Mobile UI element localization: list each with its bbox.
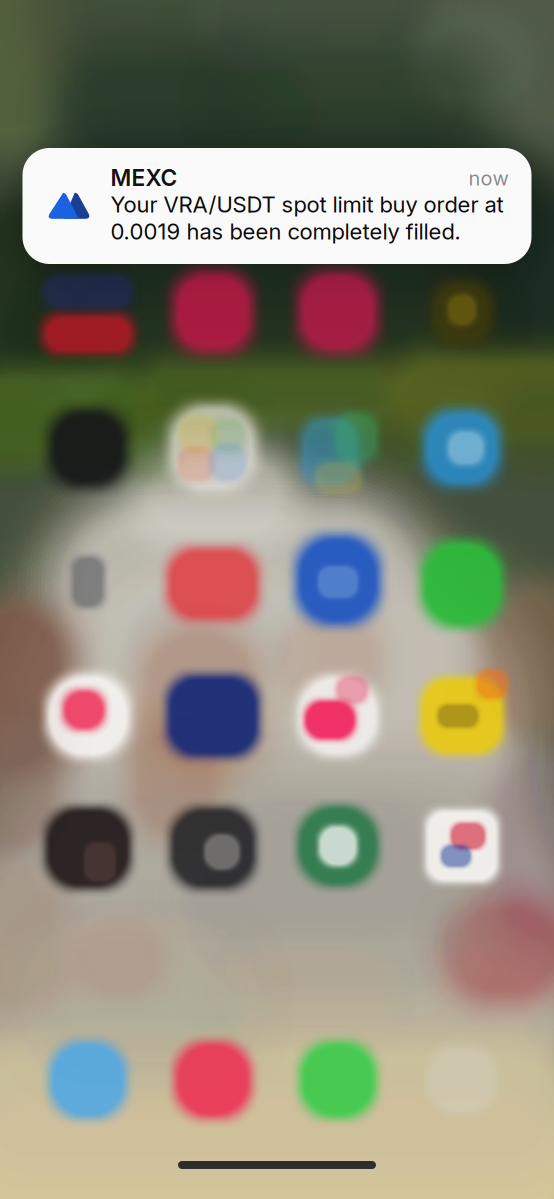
staticText: Your VRA/USDT spot limit buy order at [110, 191, 503, 218]
button[interactable]: MEXC [22, 148, 531, 264]
staticText: now [468, 166, 508, 190]
staticText: 0.0019 has been completely filled. [110, 218, 460, 245]
staticText: MEXC [110, 164, 177, 191]
